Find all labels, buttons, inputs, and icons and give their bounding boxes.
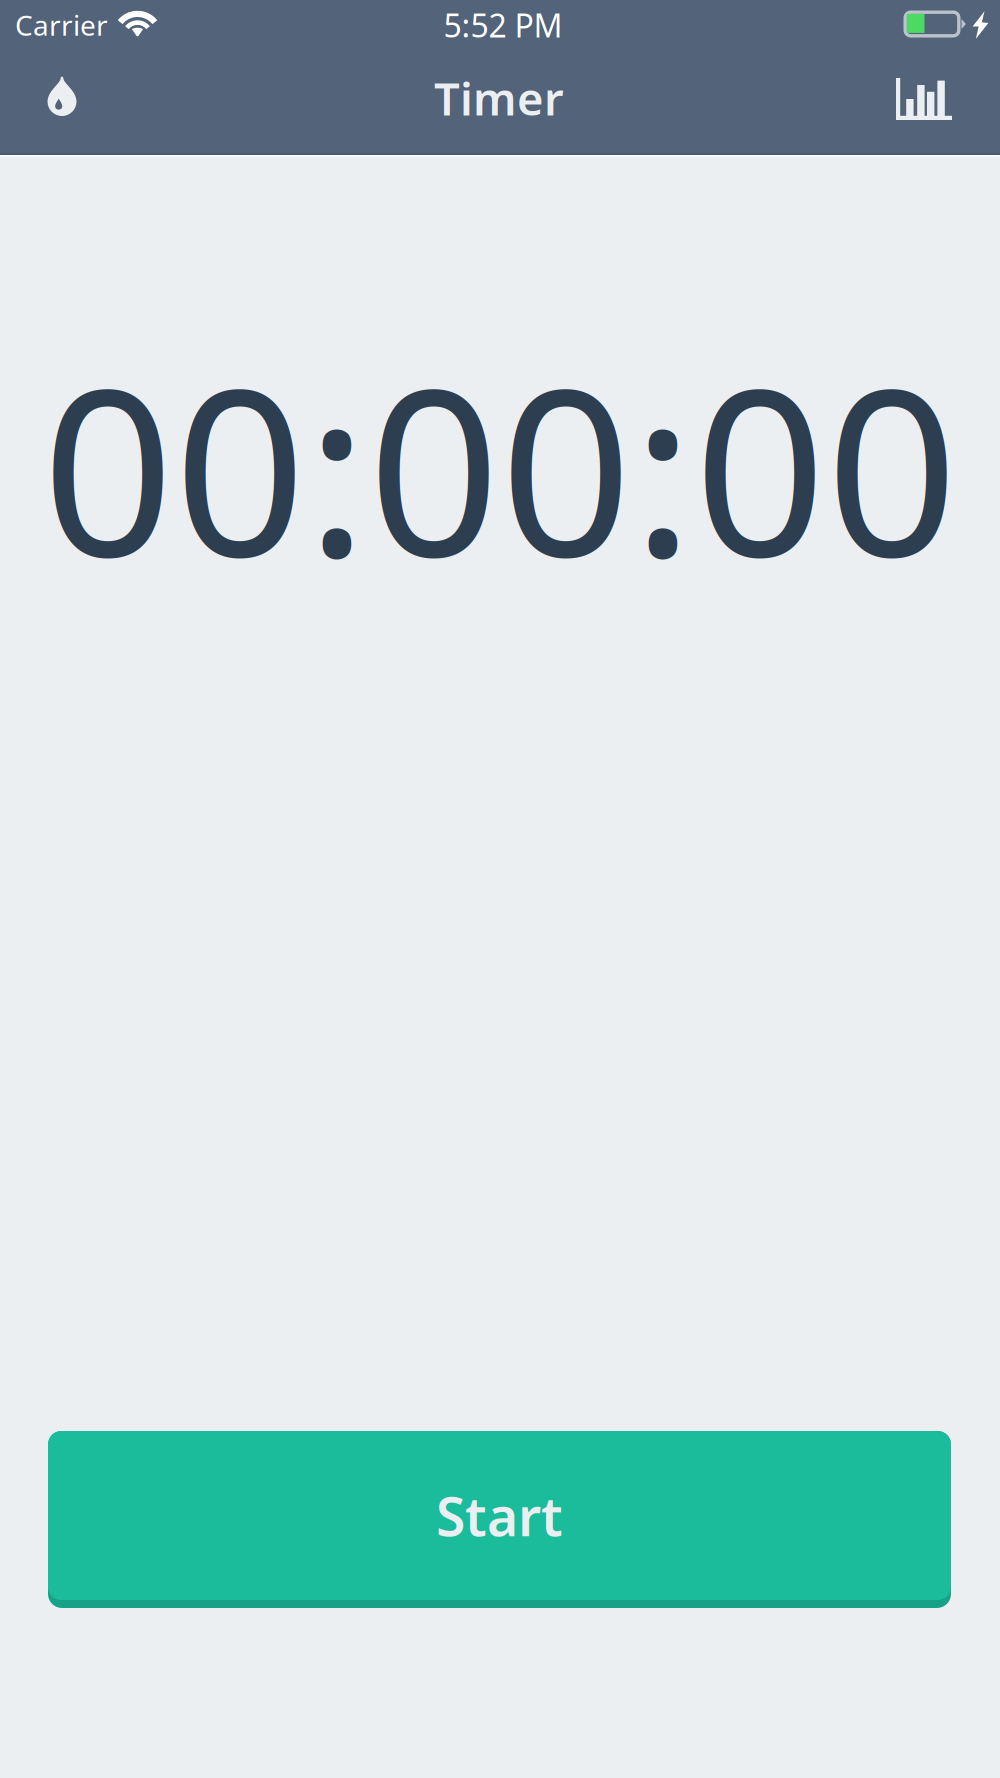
staticText: 5:52 PM	[443, 4, 562, 46]
staticText: Timer	[434, 68, 564, 128]
staticText: Carrier	[15, 6, 108, 44]
button[interactable]: Water intake	[18, 48, 106, 144]
button[interactable]: Start	[48, 1431, 951, 1608]
button[interactable]: Statistics	[880, 51, 968, 147]
staticText: Start	[436, 1480, 563, 1551]
staticText: 00:00:00	[42, 314, 958, 620]
